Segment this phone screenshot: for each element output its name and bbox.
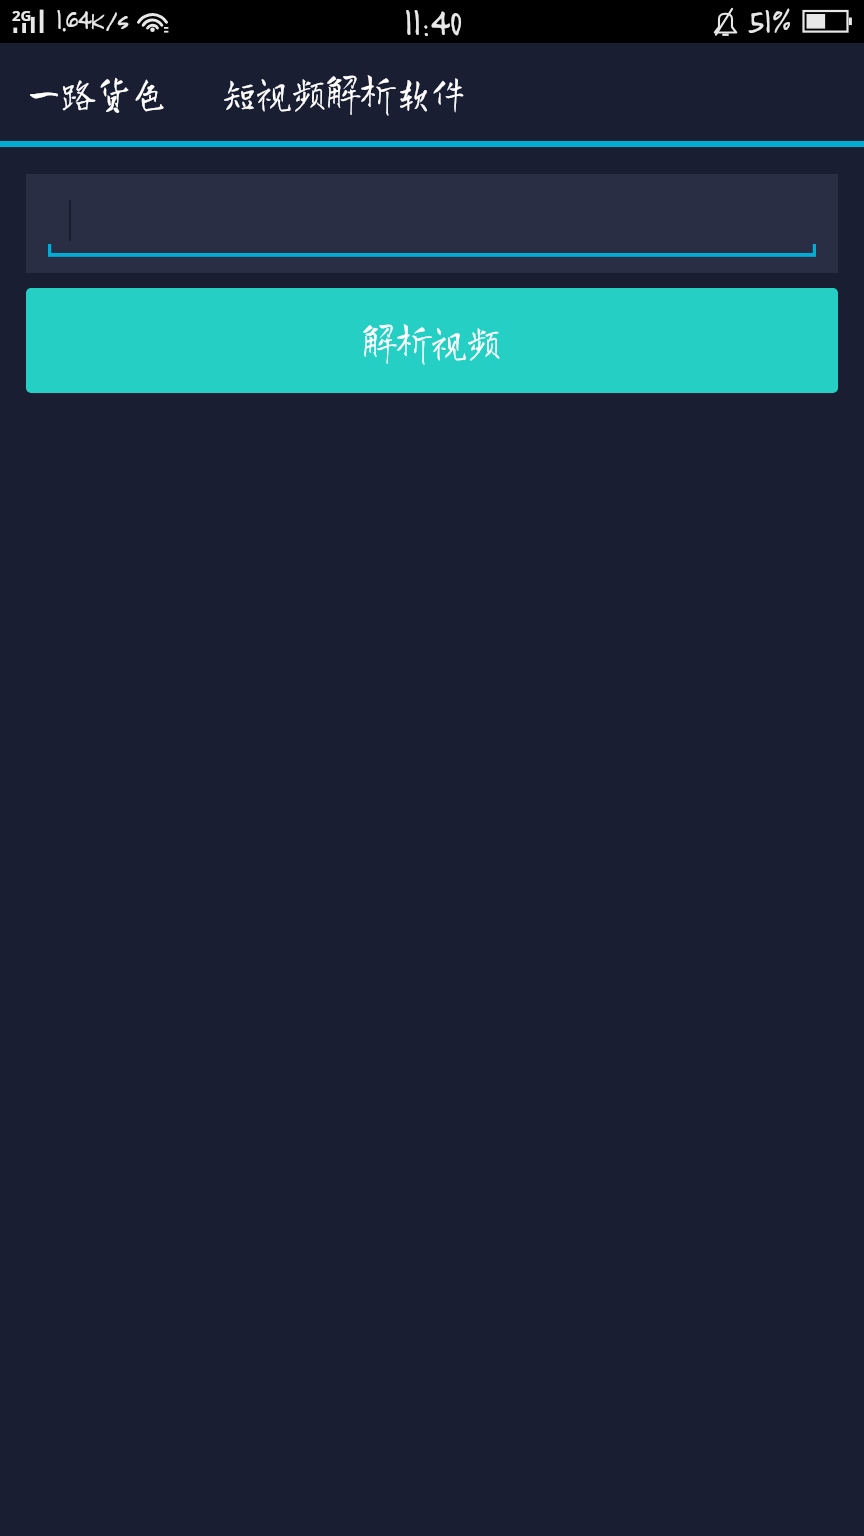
staticText: 短视频解析软件	[222, 71, 467, 113]
staticText: 解析视频	[363, 320, 502, 362]
staticText: 1.64K/s	[56, 0, 129, 37]
staticText: 51%	[747, 0, 792, 42]
button[interactable]: 一路货色	[27, 75, 168, 109]
staticText: 一路货色	[27, 71, 168, 113]
button[interactable]: 视频链接输入框	[26, 174, 838, 273]
staticText: 11:40	[404, 0, 463, 44]
staticText: 2G	[12, 5, 32, 25]
button[interactable]: 解析视频	[26, 288, 838, 393]
